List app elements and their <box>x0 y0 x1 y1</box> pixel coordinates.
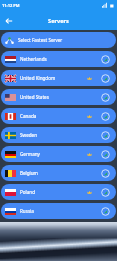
staticText: 11:12 PM <box>2 3 20 8</box>
staticText: Sweden <box>20 132 37 138</box>
staticText: Poland <box>20 189 35 195</box>
staticText: Canada <box>20 113 37 119</box>
staticText: Select Fastest Server <box>18 37 63 43</box>
staticText: Germany <box>20 151 40 157</box>
button[interactable]: Netherlands <box>1 51 116 67</box>
button[interactable]: United States <box>1 89 116 105</box>
button[interactable]: Canada <box>1 108 116 124</box>
staticText: Netherlands <box>20 56 47 62</box>
button[interactable]: Back <box>0 12 17 29</box>
staticText: Belgium <box>20 170 38 176</box>
button[interactable]: Poland <box>1 184 116 200</box>
button[interactable]: United Kingdom <box>1 70 116 86</box>
staticText: Russia <box>20 208 34 214</box>
button[interactable]: Select Fastest Server <box>1 32 116 48</box>
staticText: United States <box>20 94 49 100</box>
button[interactable]: Belgium <box>1 165 116 181</box>
button[interactable]: Russia <box>1 203 116 219</box>
staticText: Servers <box>48 17 69 25</box>
staticText: United Kingdom <box>20 75 56 81</box>
button[interactable]: Germany <box>1 146 116 162</box>
button[interactable]: Sweden <box>1 127 116 143</box>
